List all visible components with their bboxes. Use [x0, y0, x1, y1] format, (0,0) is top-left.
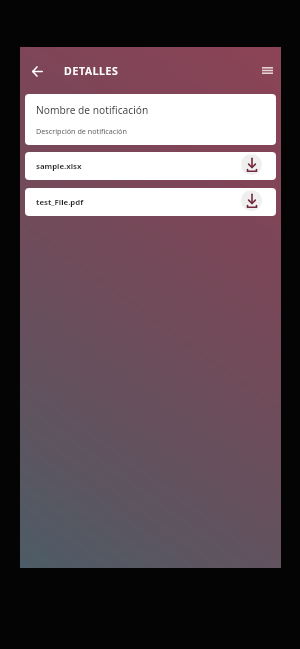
- button[interactable]: Back: [22, 56, 52, 86]
- staticText: sample.xlsx: [36, 161, 82, 172]
- staticText: Descripción de notificación: [36, 126, 127, 136]
- staticText: Nombre de notificación: [36, 103, 149, 117]
- button[interactable]: Download: [241, 154, 262, 175]
- button[interactable]: Menu: [255, 58, 280, 83]
- button[interactable]: test_File.pdf: [25, 188, 276, 216]
- button[interactable]: sample.xlsx: [25, 152, 276, 180]
- button[interactable]: Nombre de notificación: [25, 94, 276, 145]
- button[interactable]: Download: [241, 190, 262, 211]
- staticText: test_File.pdf: [36, 197, 84, 208]
- staticText: DETALLES: [64, 64, 119, 78]
